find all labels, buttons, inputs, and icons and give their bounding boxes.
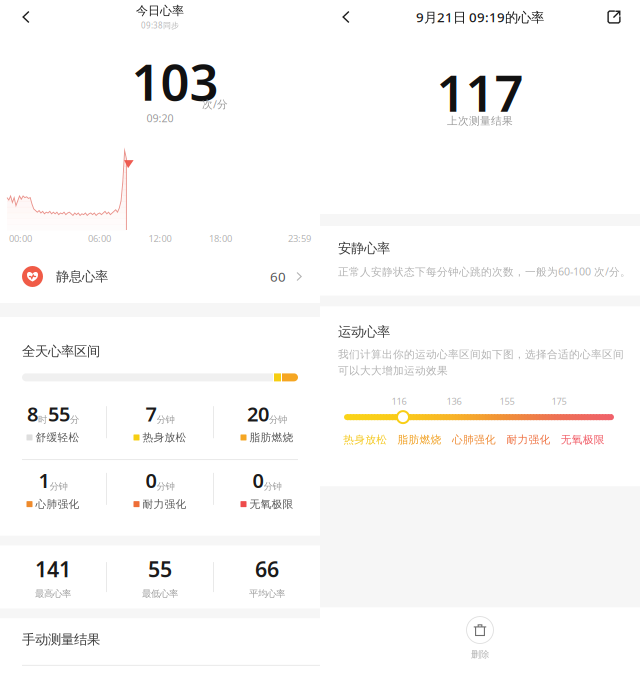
staticText: 141	[35, 555, 71, 583]
staticText: 06:00	[88, 232, 111, 245]
staticText: 分钟	[263, 481, 281, 492]
staticText: 23:59	[288, 232, 311, 245]
staticText: 可以大大增加运动效果	[338, 364, 448, 377]
staticText: 55	[148, 555, 172, 583]
staticText: 分钟	[49, 481, 67, 492]
staticText: 心肺强化	[35, 498, 79, 511]
staticText: 平均心率	[249, 588, 285, 599]
staticText: 热身放松	[343, 433, 387, 446]
staticText: 103	[131, 47, 218, 115]
staticText: 8	[27, 400, 38, 427]
staticText: 136	[446, 395, 461, 407]
staticText: 116	[391, 395, 406, 407]
staticText: 运动心率	[338, 323, 390, 340]
button[interactable]: 删除	[320, 607, 640, 674]
staticText: 次/分	[202, 97, 228, 111]
staticText: 时	[38, 414, 47, 425]
staticText: 155	[499, 395, 514, 407]
staticText: 删除	[471, 648, 489, 660]
staticText: 脂肪燃烧	[249, 431, 293, 444]
staticText: 耐力强化	[142, 498, 186, 511]
staticText: 舒缓轻松	[35, 431, 79, 444]
staticText: 20	[247, 400, 269, 427]
staticText: 心肺强化	[452, 433, 496, 446]
staticText: 12:00	[148, 232, 171, 245]
staticText: 55	[48, 400, 70, 427]
staticText: 分钟	[156, 414, 174, 425]
staticText: 9月21日 09:19的心率	[416, 8, 544, 26]
staticText: 耐力强化	[506, 433, 550, 446]
staticText: 60	[270, 268, 286, 285]
staticText: 117	[436, 58, 523, 126]
staticText: 我们计算出你的运动心率区间如下图，选择合适的心率区间	[338, 348, 624, 361]
staticText: 最高心率	[35, 588, 71, 599]
staticText: 175	[551, 395, 566, 407]
staticText: 静息心率	[56, 268, 108, 285]
button[interactable]: 返回	[332, 3, 360, 31]
staticText: 66	[255, 555, 279, 583]
staticText: 18:00	[209, 232, 232, 245]
staticText: 1	[38, 467, 49, 494]
staticText: 无氧极限	[249, 498, 293, 511]
staticText: 09:38同步	[141, 20, 179, 31]
staticText: 0	[145, 467, 156, 494]
staticText: 正常人安静状态下每分钟心跳的次数，一般为60-100 次/分。	[338, 264, 631, 279]
button[interactable]: 返回	[12, 3, 40, 31]
staticText: 热身放松	[142, 431, 186, 444]
staticText: 分	[70, 414, 79, 425]
staticText: 分钟	[156, 481, 174, 492]
staticText: 0	[252, 467, 263, 494]
staticText: 脂肪燃烧	[398, 433, 442, 446]
staticText: 最低心率	[142, 588, 178, 599]
staticText: 分钟	[269, 414, 287, 425]
staticText: 安静心率	[338, 240, 390, 256]
staticText: 00:00	[9, 232, 32, 245]
staticText: 今日心率	[136, 3, 184, 18]
staticText: 7	[145, 400, 156, 427]
button[interactable]: 分享	[600, 3, 628, 31]
staticText: 全天心率区间	[22, 343, 100, 359]
staticText: 09:20	[146, 111, 173, 125]
staticText: 无氧极限	[561, 433, 605, 446]
staticText: 上次测量结果	[447, 114, 513, 127]
staticText: 手动测量结果	[22, 631, 100, 648]
button[interactable]: 静息心率	[0, 244, 320, 303]
